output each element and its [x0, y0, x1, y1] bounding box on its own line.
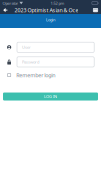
button[interactable]: LOG IN: [3, 92, 98, 100]
staticText: Remember login: [16, 72, 55, 79]
button[interactable]: Back: [0, 6, 11, 14]
staticText: 2023 Optimist Asian & Oce: [14, 7, 78, 14]
staticText: User: [22, 45, 31, 50]
button[interactable]: Login: [33, 17, 67, 23]
button[interactable]: Remember login: [3, 73, 55, 77]
staticText: Password: [22, 59, 39, 64]
staticText: 1:52 pm: [50, 0, 64, 6]
staticText: Login: [46, 17, 55, 22]
staticText: LOG IN: [44, 94, 57, 99]
button[interactable]: Display options: [90, 6, 101, 14]
staticText: Operator: [2, 0, 18, 6]
